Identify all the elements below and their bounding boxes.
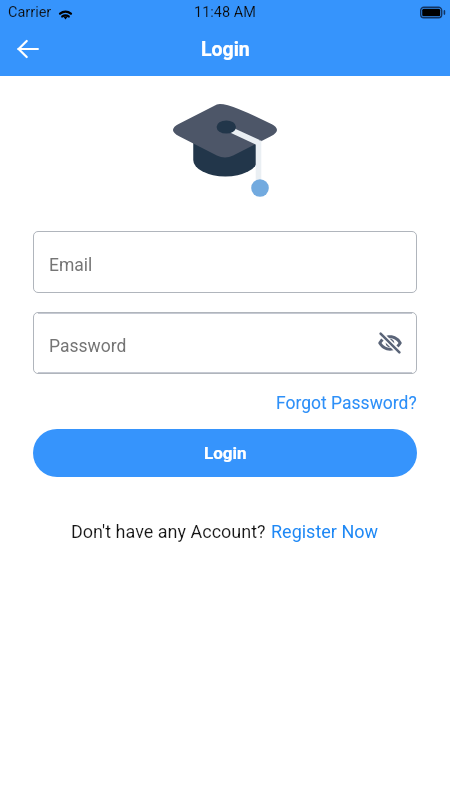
- button[interactable]: Back: [9, 30, 47, 68]
- button[interactable]: Password: [33, 312, 417, 374]
- staticText: Login: [204, 443, 247, 463]
- button[interactable]: Email: [33, 231, 417, 293]
- staticText: Login: [201, 38, 250, 61]
- button[interactable]: Show password: [371, 324, 409, 362]
- staticText: Carrier: [8, 4, 52, 21]
- staticText: 11:48 AM: [194, 4, 256, 21]
- button[interactable]: Forgot Password?: [276, 393, 417, 414]
- button[interactable]: Register Now: [271, 521, 379, 542]
- staticText: Email: [49, 255, 93, 276]
- button[interactable]: Login: [33, 429, 417, 477]
- staticText: Password: [49, 336, 127, 357]
- staticText: Don't have any Account?: [71, 521, 271, 542]
